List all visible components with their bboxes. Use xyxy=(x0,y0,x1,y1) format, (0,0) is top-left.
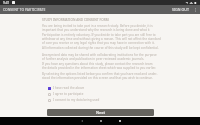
staticText: important that you understand why the re… xyxy=(42,28,161,32)
button[interactable]: Home xyxy=(91,117,110,125)
staticText: All information collected during the cou… xyxy=(42,46,159,50)
staticText: Anonymised data may be shared with colla… xyxy=(42,53,157,57)
staticText: stood the information provided on this s… xyxy=(42,76,153,80)
staticText: 9:41 xyxy=(3,1,10,5)
staticText: the details provided in the information … xyxy=(42,66,156,70)
staticText: You are being invited to take part in a … xyxy=(42,24,153,28)
button[interactable]: CONSENT TO PARTICIPATE xyxy=(3,7,46,12)
button[interactable]: More options xyxy=(192,7,198,13)
staticText: of further analysis and publication in p… xyxy=(42,57,145,61)
staticText: I consent to my data being used xyxy=(53,98,100,102)
button[interactable]: Back xyxy=(72,117,91,125)
staticText: Next xyxy=(96,110,106,115)
staticText: If you have any questions about this stu… xyxy=(42,62,161,66)
staticText: By selecting the options listed below yo… xyxy=(42,72,158,76)
button[interactable]: SIGN OUT xyxy=(172,7,189,12)
staticText: Participation is entirely voluntary. If … xyxy=(42,33,156,37)
button[interactable]: I consent to my data being used xyxy=(48,97,161,103)
button[interactable]: Recents xyxy=(110,117,129,125)
staticText: STUDY INFORMATION AND CONSENT FORM xyxy=(42,18,109,22)
button[interactable]: Next xyxy=(47,109,154,116)
button[interactable]: I agree to participate xyxy=(48,91,161,97)
staticText: of care you receive or any legal rights … xyxy=(42,41,155,45)
button[interactable]: I have read the above xyxy=(48,85,161,91)
staticText: withdraw at any time and without giving … xyxy=(42,37,161,41)
staticText: I have read the above xyxy=(53,86,85,90)
staticText: I agree to participate xyxy=(53,92,84,96)
